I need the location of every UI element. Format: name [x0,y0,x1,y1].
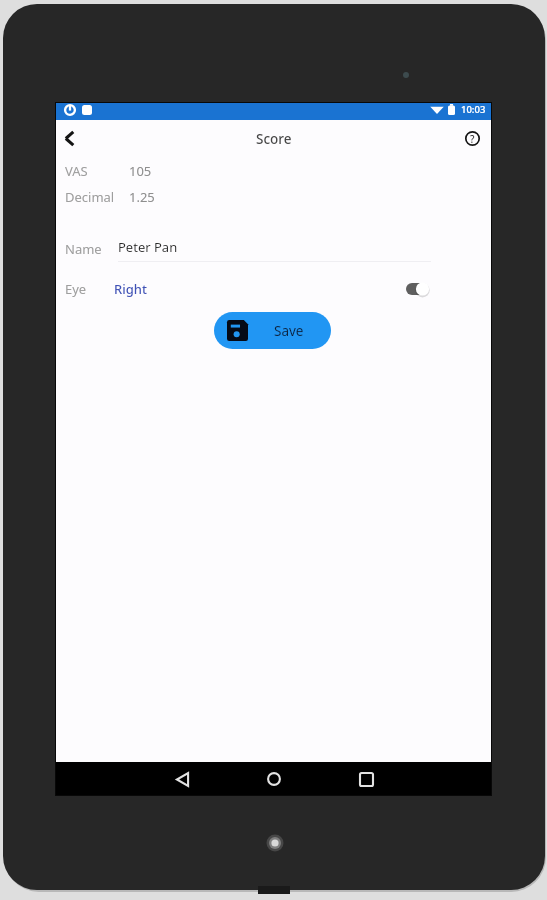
staticText: Save [274,322,304,340]
staticText: VAS [65,162,129,180]
staticText: ? [470,132,475,146]
staticText: 1.25 [129,188,155,206]
button[interactable]: Back [166,763,198,795]
button[interactable]: Toggle eye [405,279,429,299]
staticText: Name [65,240,118,258]
button[interactable]: Home [258,763,290,795]
staticText: 105 [129,162,152,180]
staticText: Eye [65,280,114,298]
button[interactable]: Back [56,120,82,157]
staticText: Right [114,280,147,298]
staticText: Score [256,130,292,148]
button[interactable]: Help [457,120,487,157]
staticText: 10:03 [461,103,486,116]
staticText: Decimal [65,188,129,206]
staticText: Peter Pan [118,238,178,256]
button[interactable]: Save [214,312,331,349]
button[interactable]: Recents [350,763,382,795]
